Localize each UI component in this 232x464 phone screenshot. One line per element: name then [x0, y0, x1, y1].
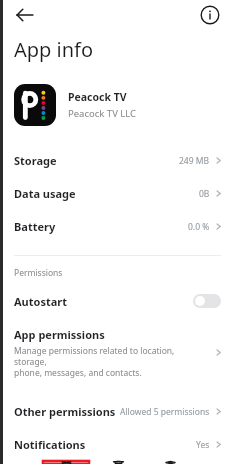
- staticText: App info: [14, 36, 94, 63]
- button[interactable]: Autostart: [3, 289, 232, 313]
- button[interactable]: About: [199, 4, 221, 26]
- staticText: Manage permissions related to location, …: [14, 345, 208, 378]
- button[interactable]: Notifications: [3, 428, 232, 461]
- button[interactable]: Uninstall: [97, 461, 139, 464]
- staticText: Storage: [14, 153, 57, 168]
- staticText: App permissions: [14, 327, 105, 342]
- staticText: Notifications: [14, 437, 86, 452]
- button[interactable]: Storage: [3, 144, 232, 177]
- button[interactable]: Back: [14, 4, 36, 26]
- button[interactable]: Force stop: [43, 461, 89, 464]
- staticText: 0.0 %: [188, 221, 210, 233]
- button[interactable]: Data usage: [3, 177, 232, 210]
- button[interactable]: Battery: [3, 210, 232, 243]
- button[interactable]: App permissions: [3, 327, 232, 378]
- staticText: 0B: [199, 188, 210, 200]
- button[interactable]: Clear data: [147, 461, 193, 464]
- button[interactable]: Peacock TV: [3, 84, 232, 126]
- staticText: Battery: [14, 219, 56, 234]
- staticText: 249 MB: [179, 155, 210, 167]
- staticText: Other permissions: [14, 404, 116, 419]
- staticText: Peacock TV LLC: [68, 107, 137, 120]
- staticText: Yes: [196, 439, 210, 451]
- staticText: Autostart: [14, 294, 67, 309]
- staticText: Permissions: [14, 267, 63, 279]
- staticText: Peacock TV: [68, 90, 127, 104]
- staticText: Data usage: [14, 186, 76, 201]
- button[interactable]: Other permissions: [3, 395, 232, 428]
- staticText: Allowed 5 permissions: [120, 406, 210, 418]
